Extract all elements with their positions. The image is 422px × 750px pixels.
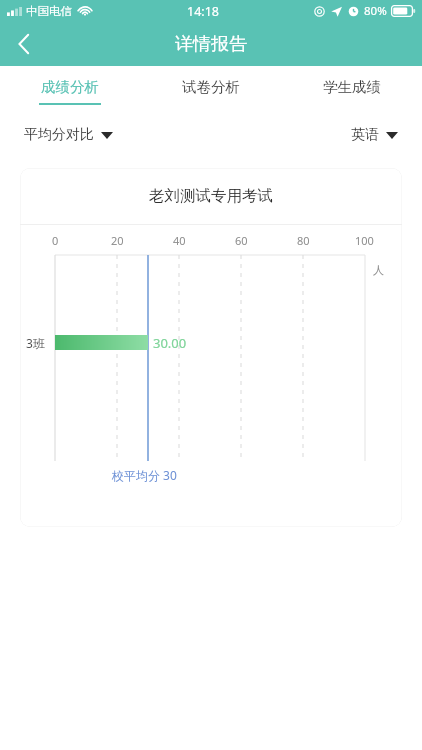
button[interactable]: Back xyxy=(0,22,48,66)
button[interactable]: 成绩分析 xyxy=(0,66,140,113)
button[interactable]: 试卷分析 xyxy=(140,66,281,113)
staticText: 详情报告 xyxy=(175,33,247,56)
button[interactable]: 英语 xyxy=(351,126,398,144)
staticText: 英语 xyxy=(351,126,379,144)
staticText: 14:18 xyxy=(187,3,219,20)
staticText: 80 xyxy=(297,233,310,248)
staticText: 20 xyxy=(111,233,124,248)
staticText: 平均分对比 xyxy=(24,126,94,144)
staticText: 中国电信 xyxy=(26,4,72,18)
staticText: 学生成绩 xyxy=(323,78,381,96)
button[interactable]: 学生成绩 xyxy=(281,66,422,113)
staticText: 3班 xyxy=(26,335,45,351)
staticText: 30.00 xyxy=(153,334,187,352)
staticText: 试卷分析 xyxy=(182,78,240,96)
staticText: 老刘测试专用考试 xyxy=(149,186,273,206)
staticText: 100 xyxy=(355,233,374,248)
staticText: 0 xyxy=(52,233,59,248)
staticText: 校平均分 30 xyxy=(112,467,177,483)
staticText: 人 xyxy=(373,263,384,277)
staticText: 60 xyxy=(235,233,248,248)
staticText: 40 xyxy=(173,233,186,248)
staticText: 成绩分析 xyxy=(41,78,99,96)
button[interactable]: 平均分对比 xyxy=(24,126,113,144)
staticText: 80% xyxy=(364,3,387,19)
